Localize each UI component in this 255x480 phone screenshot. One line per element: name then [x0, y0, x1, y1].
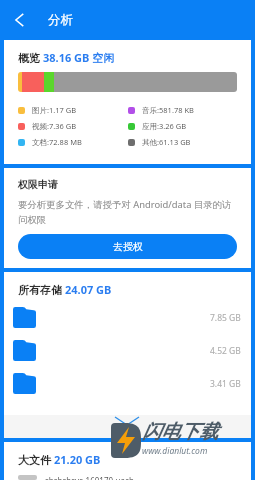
- staticText: 3.41 GB: [210, 378, 241, 390]
- staticText: 38.16 GB 空闲: [43, 50, 115, 65]
- staticText: 去授权: [113, 240, 143, 253]
- staticText: 概览: [18, 50, 43, 65]
- staticText: sbsbsbsys-160170-uach: [45, 475, 134, 480]
- staticText: 4.52 GB: [210, 345, 241, 357]
- staticText: 应用:3.26 GB: [142, 121, 187, 131]
- button[interactable]: Back: [0, 2, 38, 38]
- staticText: 其他:61.13 GB: [142, 137, 191, 147]
- staticText: 7.85 GB: [210, 312, 241, 324]
- staticText: 视频:7.36 GB: [32, 121, 77, 131]
- staticText: 闪电下载: [142, 420, 218, 444]
- button[interactable]: 4.52 GB: [13, 334, 241, 367]
- staticText: 权限申请: [18, 178, 58, 191]
- button[interactable]: 3.41 GB: [13, 367, 241, 400]
- staticText: 要分析更多文件，请授予对 Android/data 目录的访问权限: [18, 198, 237, 226]
- staticText: 音乐:581.78 KB: [142, 105, 194, 115]
- staticText: 图片:1.17 GB: [32, 105, 77, 115]
- staticText: 24.07 GB: [65, 282, 112, 297]
- button[interactable]: sbsbsbsys-160170-uach: [18, 475, 237, 480]
- staticText: 文档:72.88 MB: [32, 137, 82, 147]
- staticText: 21.20 GB: [54, 452, 101, 467]
- staticText: 大文件: [18, 452, 54, 467]
- staticText: 分析: [48, 12, 73, 28]
- button[interactable]: 7.85 GB: [13, 301, 241, 334]
- staticText: www.dianlut.com: [142, 445, 208, 457]
- staticText: 所有存储: [18, 282, 65, 297]
- button[interactable]: 去授权: [18, 234, 237, 259]
